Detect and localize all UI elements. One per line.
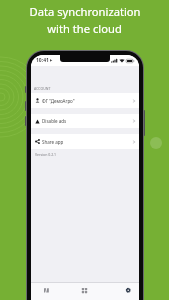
staticText: Version 0.2.1 — [35, 152, 57, 157]
button[interactable]: ФГ "ДемоАгро" — [31, 93, 139, 108]
staticText: ФГ "ДемоАгро" — [42, 98, 75, 104]
button[interactable]: Disable ads — [31, 114, 139, 128]
button[interactable] — [43, 287, 50, 294]
staticText: 10:41 — [36, 57, 49, 64]
staticText: with the cloud — [47, 21, 122, 36]
staticText: Data synchronization — [29, 4, 141, 19]
button[interactable] — [125, 287, 132, 294]
button[interactable]: Share app — [31, 134, 139, 149]
staticText: ACCOUNT — [34, 86, 51, 91]
staticText: Disable ads — [42, 118, 67, 124]
staticText: Share app — [42, 139, 64, 145]
button[interactable] — [81, 287, 88, 294]
